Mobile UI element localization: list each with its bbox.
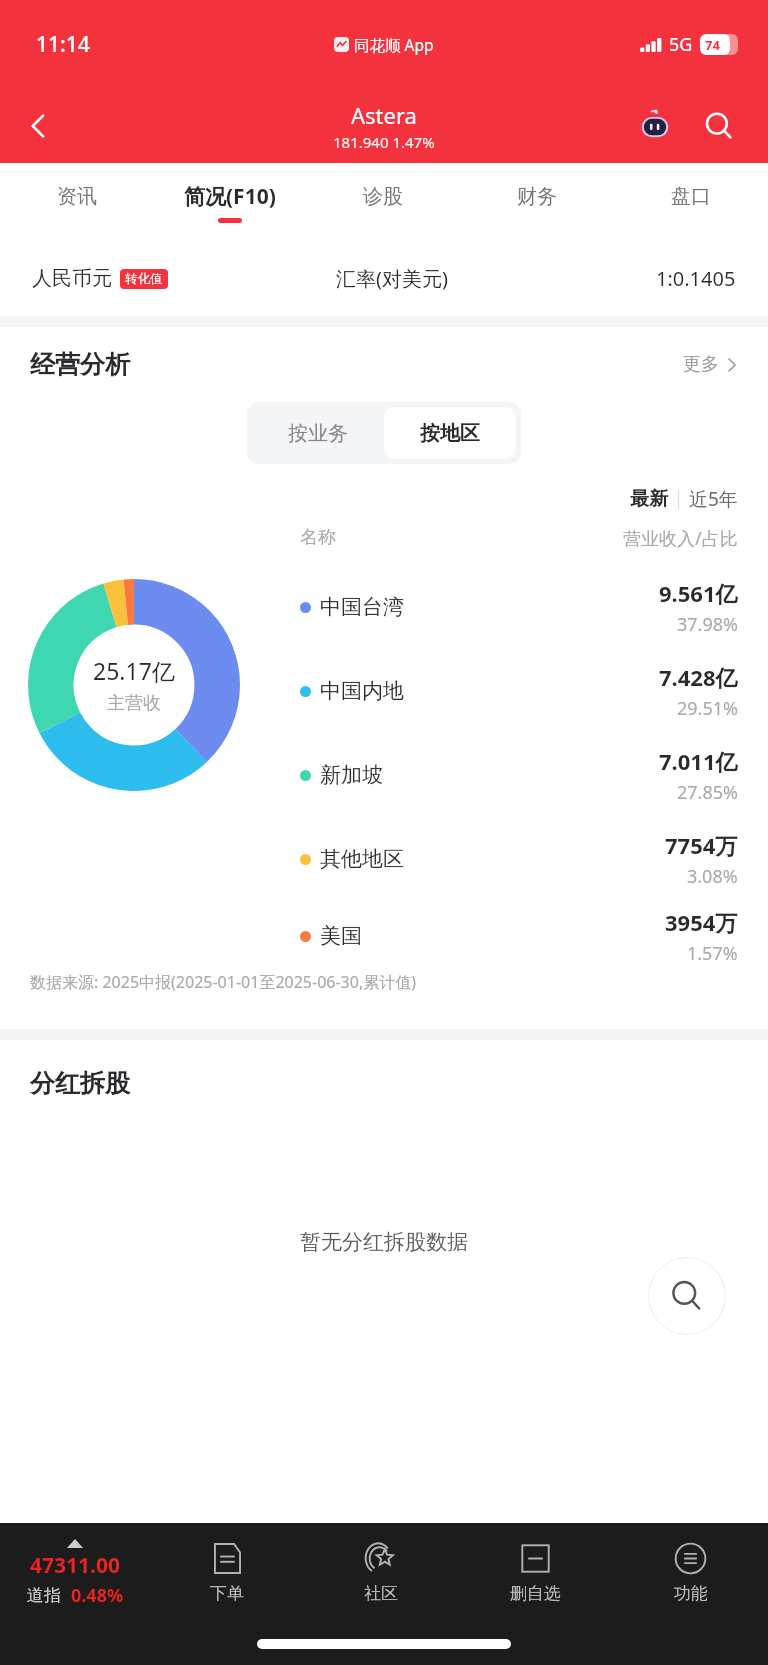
staticText: 29.51% xyxy=(677,696,738,721)
button[interactable]: 诊股 xyxy=(306,163,460,241)
staticText: 其他地区 xyxy=(320,846,404,872)
button[interactable]: 最新 xyxy=(630,487,668,511)
staticText: 3954万 xyxy=(665,907,738,937)
button[interactable]: 资讯 xyxy=(0,163,153,241)
staticText: 5G xyxy=(669,32,693,57)
staticText: 27.85% xyxy=(677,780,738,805)
staticText: 营业收入/占比 xyxy=(623,526,738,551)
button[interactable]: 近5年 xyxy=(689,486,738,512)
button[interactable]: 47311.00 xyxy=(0,1523,150,1623)
button[interactable]: 更多 xyxy=(683,353,738,376)
staticText: 47311.00 xyxy=(30,1551,120,1580)
staticText: 新加坡 xyxy=(320,762,383,788)
staticText: 同花顺 App xyxy=(354,34,434,55)
staticText: 11:14 xyxy=(36,30,90,59)
staticText: 按地区 xyxy=(420,421,480,446)
button[interactable]: 按业务 xyxy=(252,407,384,459)
staticText: 财务 xyxy=(517,184,557,209)
staticText: 近5年 xyxy=(689,486,738,512)
button[interactable]: 功能 xyxy=(613,1523,768,1623)
staticText: Astera xyxy=(351,100,417,130)
staticText: 中国内地 xyxy=(320,678,404,704)
staticText: 181.940 1.47% xyxy=(333,132,435,152)
button[interactable]: 其他地区 xyxy=(300,817,768,901)
staticText: 简况(F10) xyxy=(184,182,276,211)
staticText: 汇率(对美元) xyxy=(336,265,448,292)
staticText: 名称 xyxy=(300,526,336,549)
staticText: 0.48% xyxy=(71,1583,124,1608)
staticText: 资讯 xyxy=(57,184,97,209)
button[interactable]: 盘口 xyxy=(614,163,768,241)
staticText: 道指 xyxy=(27,1585,61,1606)
button[interactable]: Search xyxy=(648,1257,726,1335)
staticText: 暂无分红拆股数据 xyxy=(300,1229,468,1255)
button[interactable]: 删自选 xyxy=(458,1523,613,1623)
staticText: 7.011亿 xyxy=(659,746,738,776)
staticText: 按业务 xyxy=(288,421,348,446)
button[interactable]: 财务 xyxy=(460,163,614,241)
staticText: 最新 xyxy=(630,487,668,511)
button[interactable]: 社区 xyxy=(304,1523,458,1623)
button[interactable]: 中国台湾 xyxy=(300,565,768,649)
staticText: 7.428亿 xyxy=(659,662,738,692)
staticText: 社区 xyxy=(364,1583,398,1604)
staticText: 1:0.1405 xyxy=(656,265,736,292)
button[interactable]: Search xyxy=(694,101,744,151)
button[interactable]: Back xyxy=(0,88,78,163)
staticText: 3.08% xyxy=(687,864,738,889)
staticText: 7754万 xyxy=(665,830,738,860)
button[interactable]: 新加坡 xyxy=(300,733,768,817)
staticText: 人民币元 xyxy=(32,266,112,291)
staticText: 9.561亿 xyxy=(659,578,738,608)
staticText: 25.17亿 xyxy=(93,655,175,686)
staticText: 下单 xyxy=(210,1583,244,1604)
staticText: 中国台湾 xyxy=(320,594,404,620)
staticText: 更多 xyxy=(683,353,719,376)
staticText: 主营收 xyxy=(107,692,161,715)
staticText: 74 xyxy=(705,36,720,54)
staticText: 1.57% xyxy=(687,941,738,966)
staticText: 盘口 xyxy=(671,184,711,209)
button[interactable]: 按地区 xyxy=(384,407,516,459)
staticText: 数据来源: 2025中报(2025-01-01至2025-06-30,累计值) xyxy=(30,971,416,993)
staticText: 经营分析 xyxy=(30,349,130,380)
staticText: 转化值 xyxy=(125,271,163,287)
staticText: 删自选 xyxy=(510,1583,561,1604)
button[interactable]: AI assistant xyxy=(630,101,680,151)
staticText: 37.98% xyxy=(677,612,738,637)
button[interactable]: 中国内地 xyxy=(300,649,768,733)
button[interactable]: 下单 xyxy=(150,1523,304,1623)
staticText: 功能 xyxy=(674,1583,708,1604)
button[interactable]: 简况(F10) xyxy=(153,163,306,241)
staticText: 美国 xyxy=(320,923,362,949)
button[interactable]: 转化值 xyxy=(125,271,163,287)
staticText: 诊股 xyxy=(363,184,403,209)
staticText: 分红拆股 xyxy=(30,1068,130,1099)
button[interactable]: 美国 xyxy=(300,901,768,971)
